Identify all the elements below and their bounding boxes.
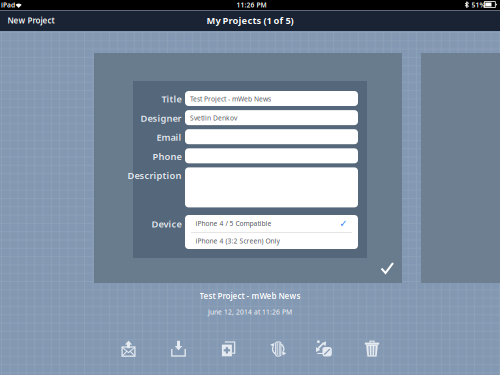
button[interactable]: Rotate device xyxy=(259,334,297,364)
staticText: Test Project - mWeb News xyxy=(199,291,300,301)
button[interactable]: iPhone 4 / 5 Compatible xyxy=(185,215,358,232)
button[interactable]: Svetlin Denkov xyxy=(185,110,358,125)
staticText: Designer xyxy=(140,112,181,124)
staticText: iPhone 4 / 5 Compatible xyxy=(195,219,271,228)
button[interactable]: Delete project xyxy=(353,334,391,364)
staticText: ✓ xyxy=(339,218,347,229)
button[interactable]: Save project xyxy=(159,334,197,364)
staticText: 11:26 PM xyxy=(236,0,266,9)
staticText: June 12, 2014 at 11:26 PM xyxy=(208,308,292,316)
button[interactable]: Done xyxy=(380,262,396,276)
staticText: New Project xyxy=(7,15,54,26)
staticText: Device xyxy=(151,218,181,230)
button[interactable] xyxy=(185,148,358,163)
staticText: Svetlin Denkov xyxy=(190,113,237,122)
button[interactable]: Move project xyxy=(305,334,343,364)
button[interactable]: New Project xyxy=(0,10,70,31)
button[interactable]: Test Project - mWeb News xyxy=(185,91,358,106)
staticText: My Projects (1 of 5) xyxy=(206,14,293,27)
button[interactable]: Email project xyxy=(109,334,147,364)
button[interactable]: Description xyxy=(185,167,358,207)
button[interactable]: Duplicate project xyxy=(209,334,247,364)
staticText: Email xyxy=(156,131,181,143)
staticText: iPhone 4 (3:2 Screen) Only xyxy=(195,236,279,245)
staticText: Description xyxy=(127,169,181,182)
staticText: Phone xyxy=(152,150,181,162)
button[interactable] xyxy=(185,129,358,144)
staticText: Title xyxy=(161,93,181,105)
button[interactable]: iPhone 4 (3:2 Screen) Only xyxy=(185,233,358,249)
staticText: Test Project - mWeb News xyxy=(190,94,271,103)
staticText: 51% xyxy=(471,0,485,9)
staticText: iPad xyxy=(1,0,15,9)
